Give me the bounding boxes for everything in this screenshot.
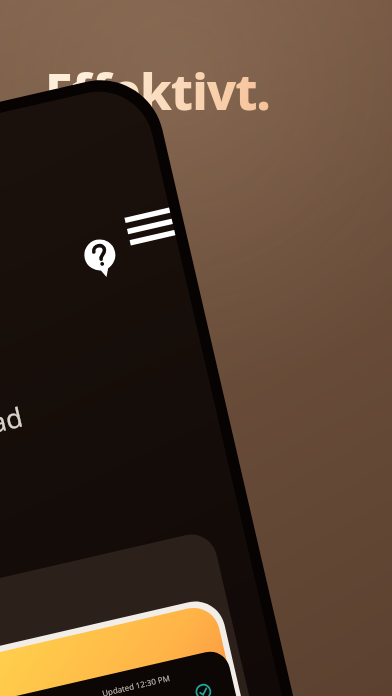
button[interactable]: Menu <box>126 206 184 250</box>
button[interactable]: Help <box>72 228 118 274</box>
button[interactable]: Shipment list <box>18 596 252 696</box>
